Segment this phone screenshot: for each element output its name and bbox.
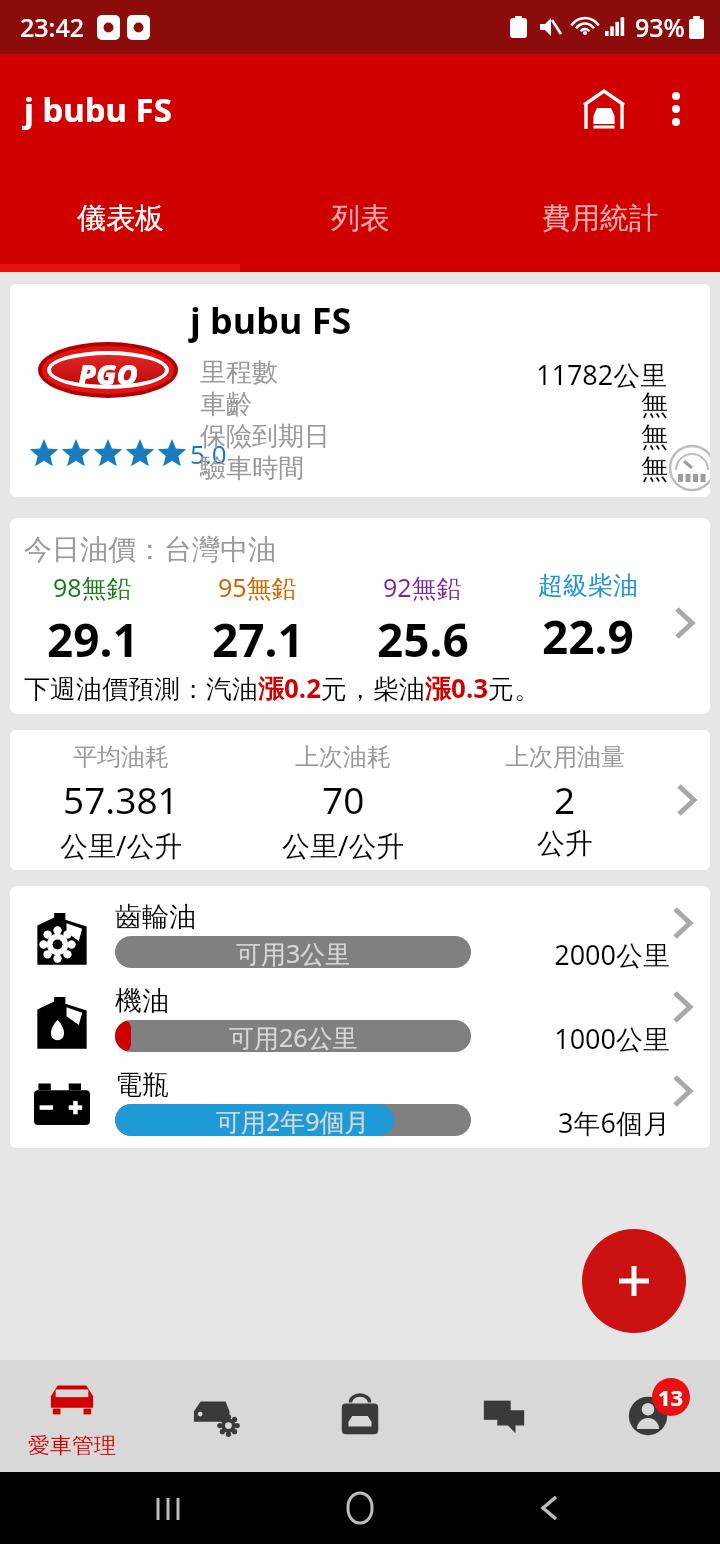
staticText: 愛車管理 (28, 1432, 116, 1460)
staticText: 27.1 (212, 608, 304, 671)
staticText: 公里/公升 (60, 826, 183, 864)
staticText: 公升 (537, 826, 593, 861)
staticText: 5.0 (190, 436, 227, 471)
staticText: 92無鉛 (383, 570, 462, 604)
staticText: 列表 (331, 200, 389, 237)
button[interactable]: 今日油價：台灣中油 (10, 518, 710, 714)
staticText: 1000公里 (500, 1020, 670, 1057)
button[interactable]: j bubu FS (10, 284, 710, 497)
staticText: 公里/公升 (282, 826, 405, 864)
staticText: 保險到期日 (200, 420, 330, 452)
staticText: 可用26公里 (229, 1020, 358, 1052)
button[interactable]: 齒輪油 (10, 886, 710, 1148)
button[interactable]: 電瓶 (10, 1066, 710, 1148)
button[interactable]: 列表 (240, 164, 480, 272)
staticText: 98無鉛 (53, 570, 132, 604)
staticText: 無 (641, 420, 668, 452)
button[interactable]: Add (582, 1229, 686, 1333)
staticText: 23:42 (20, 10, 85, 44)
staticText: 2 (554, 774, 576, 824)
staticText: 機油 (115, 984, 169, 1018)
staticText: j bubu FS (24, 87, 172, 132)
staticText: 無 (641, 388, 668, 420)
staticText: 可用3公里 (236, 936, 351, 968)
staticText: 2000公里 (500, 936, 670, 973)
staticText: 儀表板 (77, 200, 164, 237)
staticText: 無 (641, 452, 668, 484)
button[interactable]: 齒輪油 (10, 898, 710, 982)
staticText: 驗車時間 (200, 452, 304, 484)
button[interactable]: Garage (576, 81, 632, 137)
staticText: 22.9 (542, 605, 634, 668)
staticText: 95無鉛 (218, 570, 297, 604)
staticText: 下週油價預測：汽油漲0.2元，柴油漲0.3元。 (24, 670, 541, 706)
button[interactable]: 愛車管理 (0, 1360, 144, 1472)
staticText: j bubu FS (190, 296, 352, 345)
staticText: 平均油耗 (73, 742, 169, 772)
staticText: 70 (322, 774, 365, 824)
button[interactable]: 費用統計 (480, 164, 720, 272)
staticText: 車齡 (200, 388, 252, 420)
button[interactable]: 機油 (10, 982, 710, 1066)
button[interactable]: Profile (576, 1360, 720, 1472)
button[interactable]: 平均油耗 (10, 730, 710, 870)
staticText: 今日油價：台灣中油 (24, 532, 276, 567)
staticText: 11782公里 (536, 356, 668, 388)
staticText: 電瓶 (115, 1068, 169, 1102)
staticText: 里程數 (200, 356, 278, 388)
staticText: 29.1 (47, 608, 139, 671)
staticText: 57.381 (63, 774, 179, 824)
staticText: 93% (635, 10, 685, 44)
staticText: 3年6個月 (500, 1104, 670, 1141)
button[interactable]: Service (144, 1360, 288, 1472)
staticText: PGO (38, 354, 178, 393)
button[interactable]: More options (650, 83, 702, 135)
staticText: 超級柴油 (538, 570, 638, 601)
button[interactable]: Chat (432, 1360, 576, 1472)
button[interactable]: Shop (288, 1360, 432, 1472)
staticText: 費用統計 (542, 200, 658, 237)
staticText: 13 (658, 1382, 684, 1412)
staticText: 上次用油量 (505, 742, 625, 772)
staticText: 可用2年9個月 (216, 1104, 370, 1136)
staticText: 25.6 (377, 608, 469, 671)
staticText: 齒輪油 (115, 900, 196, 934)
staticText: 上次油耗 (295, 742, 391, 772)
button[interactable]: 儀表板 (0, 164, 240, 272)
